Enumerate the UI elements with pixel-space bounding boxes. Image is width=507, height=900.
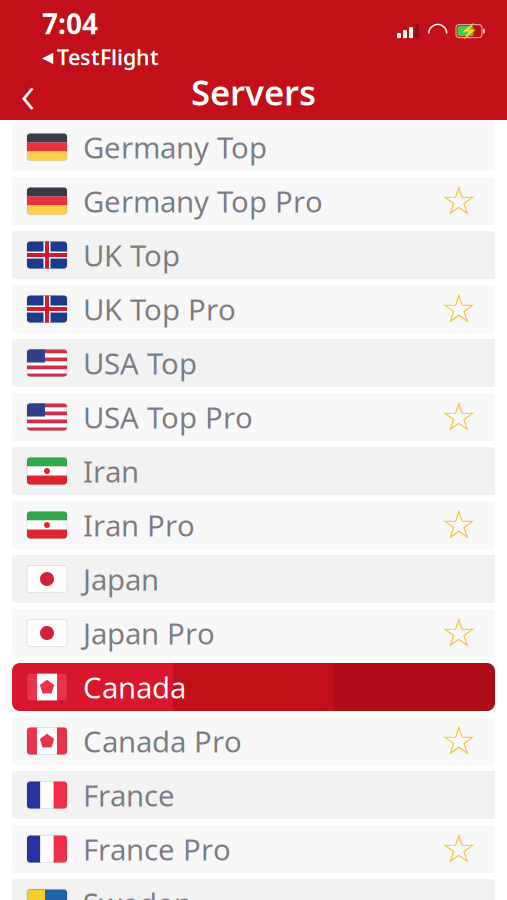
staticText: ☆ [441,718,477,764]
button[interactable]: Sweden [0,879,507,900]
button[interactable]: Back [0,68,56,116]
staticText: ◀ [42,49,53,65]
button[interactable]: ⬟ [0,663,507,711]
staticText: Sweden [83,883,192,900]
staticText: ☆ [441,286,477,332]
staticText: ⬟ [39,731,54,751]
staticText: ⚡ [460,23,478,39]
staticText: Iran Pro [83,505,195,544]
button[interactable]: UK Top [0,231,507,279]
staticText: France [83,775,175,814]
button[interactable]: Japan Pro [0,609,507,657]
staticText: Canada [83,667,186,706]
button[interactable]: Germany Top Pro [0,177,507,225]
staticText: USA Top Pro [83,397,253,436]
button[interactable]: UK Top Pro [0,285,507,333]
staticText: ‹ [20,55,35,129]
staticText: Germany Top [83,127,267,166]
staticText: USA Top [83,343,197,382]
staticText: UK Top Pro [83,289,236,328]
staticText: Canada Pro [83,721,242,760]
staticText: Servers [191,69,316,115]
button[interactable]: USA Top [0,339,507,387]
button[interactable]: France [0,771,507,819]
button[interactable]: Japan [0,555,507,603]
staticText: ☆ [441,610,477,656]
staticText: ☆ [441,826,477,872]
staticText: UK Top [83,235,180,274]
button[interactable]: Germany Top [0,123,507,171]
staticText: ☆ [441,394,477,440]
staticText: France Pro [83,829,231,868]
staticText: ☆ [441,502,477,548]
staticText: 7:04 [42,5,98,42]
staticText: Japan [83,559,159,598]
staticText: ◠ [428,17,447,45]
staticText: TestFlight [57,43,159,71]
staticText: ⬟ [39,677,54,697]
button[interactable]: France Pro [0,825,507,873]
button[interactable]: USA Top Pro [0,393,507,441]
staticText: Germany Top Pro [83,181,323,220]
button[interactable]: Iran Pro [0,501,507,549]
button[interactable]: ⬟ [0,717,507,765]
staticText: ☆ [441,178,477,224]
staticText: Iran [83,451,139,490]
staticText: Japan Pro [83,613,215,652]
button[interactable]: Iran [0,447,507,495]
